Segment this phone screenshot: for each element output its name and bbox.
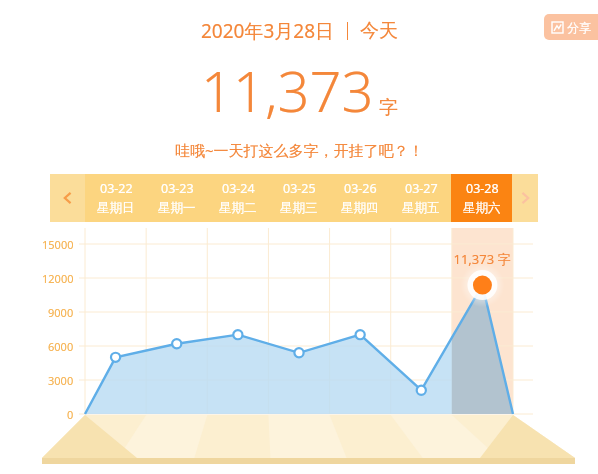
button[interactable]: 03-26 xyxy=(329,174,390,222)
staticText: 哇哦~一天打这么多字，开挂了吧？！ xyxy=(175,140,424,160)
staticText: 03-25 xyxy=(283,180,316,197)
staticText: 星期一 xyxy=(158,200,196,216)
staticText: 6000 xyxy=(48,339,74,354)
staticText: 星期四 xyxy=(341,200,379,216)
staticText: 今天 xyxy=(360,19,398,43)
staticText: 2020年3月28日 xyxy=(201,18,335,44)
button[interactable]: 03-28 xyxy=(451,174,512,222)
staticText: 03-26 xyxy=(344,180,377,197)
button[interactable]: 上一周 xyxy=(50,174,85,222)
button[interactable]: 03-24 xyxy=(207,174,268,222)
staticText: 星期六 xyxy=(463,200,501,216)
staticText: 星期日 xyxy=(97,200,135,216)
staticText: 3000 xyxy=(48,373,74,388)
staticText: 03-22 xyxy=(100,180,133,197)
button[interactable]: 下一周 xyxy=(512,174,538,222)
staticText: 12000 xyxy=(42,271,74,286)
staticText: 11,373 xyxy=(201,52,374,128)
button[interactable]: 03-27 xyxy=(390,174,451,222)
staticText: 03-23 xyxy=(161,180,194,197)
button[interactable]: 分享 xyxy=(544,14,598,40)
button[interactable]: 03-25 xyxy=(268,174,329,222)
staticText: 星期三 xyxy=(280,200,318,216)
staticText: 11,373 字 xyxy=(437,250,527,268)
staticText: 9000 xyxy=(48,305,74,320)
staticText: 03-28 xyxy=(466,180,499,197)
button[interactable]: 03-22 xyxy=(85,174,146,222)
staticText: 星期二 xyxy=(219,200,257,216)
button[interactable]: 03-23 xyxy=(146,174,207,222)
staticText: 03-27 xyxy=(405,180,438,197)
staticText: 分享 xyxy=(567,20,591,35)
staticText: 03-24 xyxy=(222,180,255,197)
staticText: 15000 xyxy=(42,237,74,252)
staticText: 0 xyxy=(67,407,74,422)
staticText: 字 xyxy=(379,96,398,120)
staticText: 星期五 xyxy=(402,200,440,216)
